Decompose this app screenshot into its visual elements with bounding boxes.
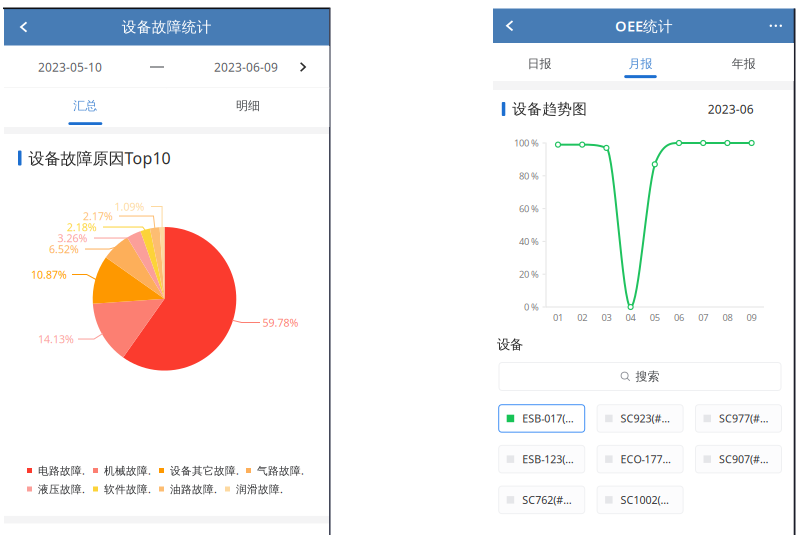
staticText: 06	[674, 311, 684, 324]
staticText: 07	[698, 311, 708, 324]
staticText: 日报	[528, 56, 552, 71]
button[interactable]: SC977(#…	[695, 405, 781, 432]
button[interactable]: SC923(#…	[597, 405, 683, 432]
staticText: 09	[747, 311, 757, 324]
staticText: 设备故障原因Top10	[28, 147, 170, 169]
staticText: 01	[553, 311, 563, 324]
staticText: 年报	[732, 56, 756, 71]
staticText: 2023-06	[708, 101, 754, 117]
staticText: 10.87%	[31, 267, 67, 282]
button[interactable]: 2023-05-10	[4, 46, 329, 88]
staticText: 明细	[236, 98, 260, 113]
staticText: 02	[577, 311, 587, 324]
staticText: 润滑故障.	[236, 482, 283, 496]
button[interactable]: 日报	[490, 43, 590, 81]
staticText: 设备趋势图	[512, 100, 587, 118]
staticText: 气路故障.	[257, 463, 304, 478]
staticText: SC762(#…	[522, 493, 571, 507]
staticText: 设备故障统计	[122, 18, 212, 36]
button[interactable]: 明细	[167, 88, 329, 127]
staticText: 液压故障.	[38, 482, 85, 496]
staticText: 2023-06-09	[214, 59, 278, 75]
button[interactable]: SC762(#…	[499, 486, 585, 514]
staticText: 40 %	[519, 235, 539, 248]
button[interactable]: SC907(#…	[695, 445, 781, 473]
staticText: 油路故障.	[170, 482, 217, 496]
staticText: 100 %	[514, 137, 539, 149]
button[interactable]: 设备故障统计	[4, 8, 329, 45]
staticText: 设备其它故障.	[170, 463, 239, 478]
staticText: 03	[601, 311, 611, 324]
button[interactable]: 汇总	[4, 88, 167, 127]
staticText: 0 %	[524, 301, 539, 313]
staticText: 80 %	[519, 170, 539, 182]
button[interactable]: 年报	[694, 43, 794, 81]
staticText: 搜索	[635, 369, 659, 384]
button[interactable]: ECO-177…	[597, 445, 683, 473]
staticText: ESB-017(…	[522, 411, 573, 426]
staticText: 3.26%	[57, 231, 87, 245]
staticText: OEE统计	[615, 16, 673, 36]
staticText: ECO-177…	[621, 452, 671, 466]
staticText: 20 %	[519, 268, 539, 280]
button[interactable]: SC1002(…	[597, 486, 683, 514]
staticText: SC907(#…	[719, 452, 768, 466]
staticText: 60 %	[519, 202, 539, 215]
button[interactable]: More options	[757, 8, 795, 43]
staticText: 6.52%	[49, 242, 79, 256]
staticText: 电路故障.	[38, 463, 85, 478]
button[interactable]: Back	[493, 8, 527, 43]
button[interactable]: 搜索	[499, 362, 781, 390]
staticText: 月报	[628, 56, 652, 71]
staticText: SC977(#…	[719, 411, 768, 426]
staticText: 08	[722, 311, 732, 324]
button[interactable]: 月报	[590, 43, 690, 81]
staticText: 05	[650, 311, 660, 324]
staticText: ESB-123(…	[522, 452, 573, 466]
staticText: SC1002(…	[621, 493, 669, 507]
staticText: 机械故障.	[104, 463, 151, 478]
staticText: 2.18%	[67, 220, 97, 234]
staticText: 2.17%	[83, 209, 113, 223]
button[interactable]: ESB-017(…	[499, 405, 585, 432]
staticText: 14.13%	[38, 332, 74, 346]
staticText: 04	[626, 311, 636, 324]
staticText: 软件故障.	[104, 482, 151, 496]
staticText: 汇总	[73, 98, 97, 113]
staticText: 设备	[497, 336, 523, 353]
staticText: SC923(#…	[621, 411, 670, 426]
staticText: 2023-05-10	[38, 59, 102, 75]
staticText: 59.78%	[262, 315, 298, 330]
button[interactable]: ESB-123(…	[499, 445, 585, 473]
staticText: 1.09%	[114, 199, 144, 214]
